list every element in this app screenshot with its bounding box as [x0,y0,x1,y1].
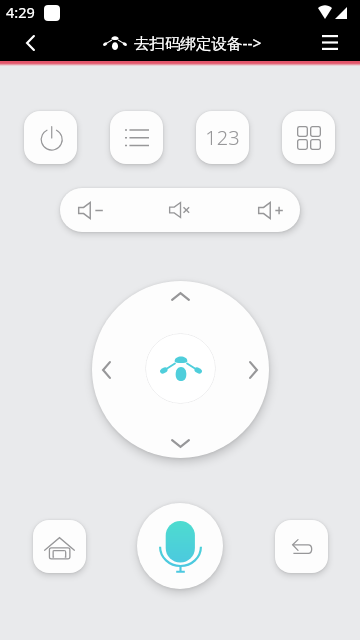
button[interactable]: Menu [110,111,163,164]
button[interactable]: Down [149,422,211,458]
button[interactable]: Menu [310,24,350,61]
button[interactable]: Back [10,24,50,61]
button[interactable]: Up [149,281,211,317]
button[interactable]: OK [145,333,216,404]
staticText: 4:29 [6,2,35,22]
button[interactable]: Voice [137,503,223,589]
button[interactable]: Volume down [60,188,133,232]
button[interactable]: Apps [282,111,335,164]
button[interactable]: Home [33,520,86,573]
button[interactable]: Right [232,339,269,401]
button[interactable]: Back [275,520,328,573]
staticText: 去扫码绑定设备--> [134,32,262,53]
button[interactable]: Left [92,339,127,401]
button[interactable]: 123 [196,111,249,164]
button[interactable]: Power [24,111,77,164]
button[interactable]: Mute [143,188,217,232]
button[interactable]: Volume up [227,188,300,232]
staticText: 123 [205,124,240,151]
